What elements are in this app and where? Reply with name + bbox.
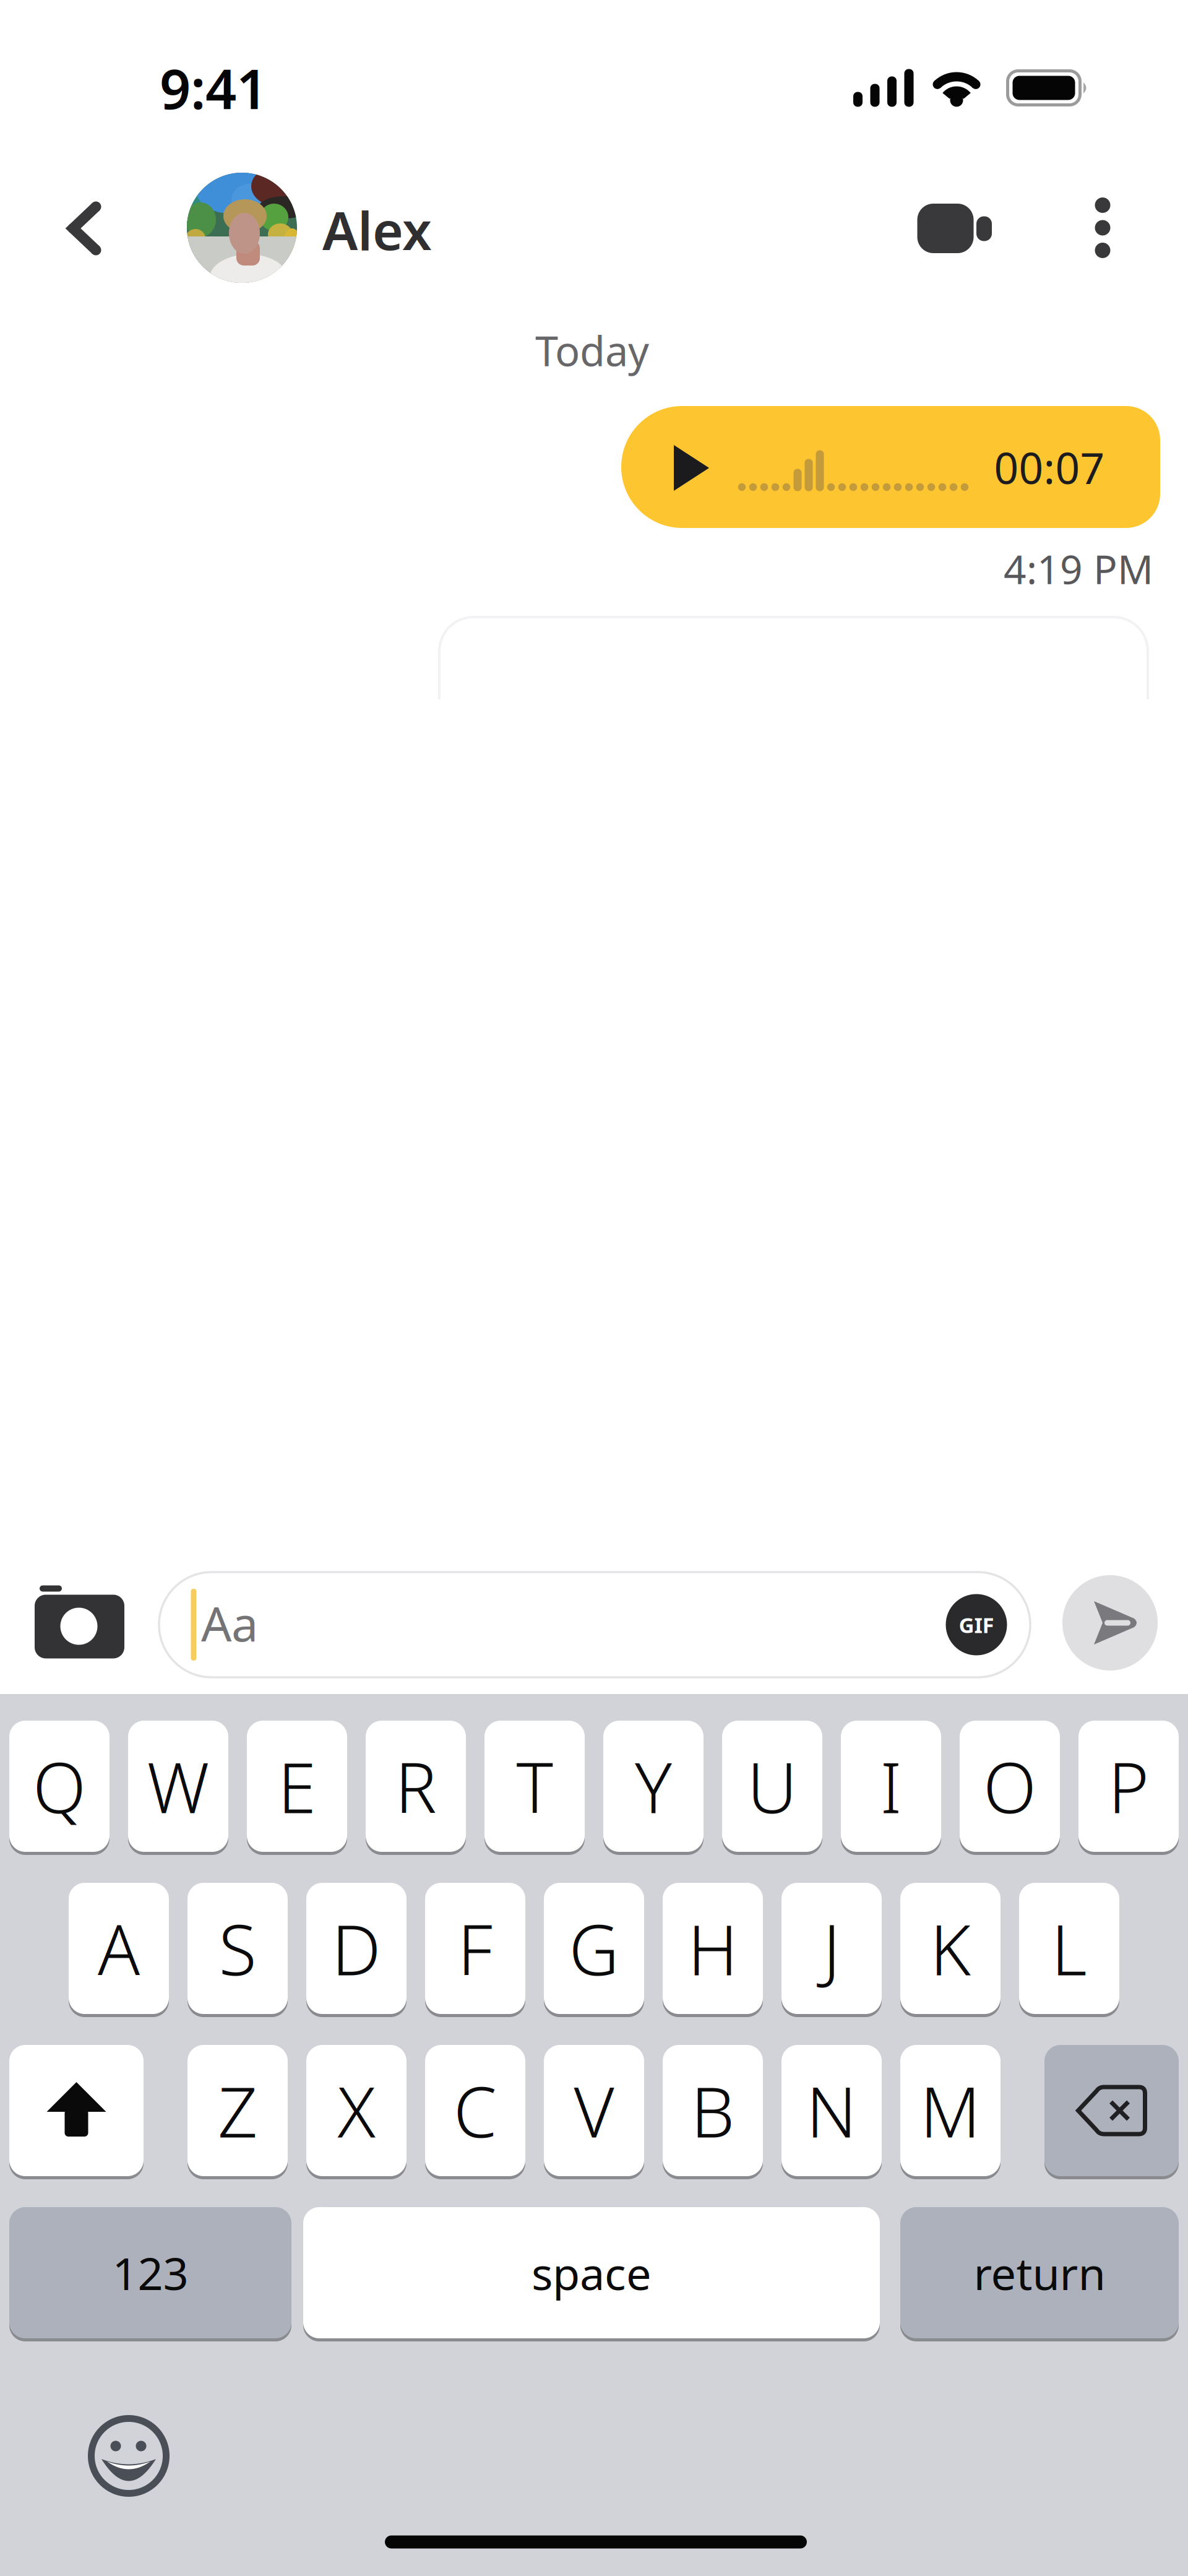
staticText: B [691,2065,735,2157]
button[interactable]: E [247,1719,347,1853]
button[interactable] [67,201,104,256]
button[interactable]: N [781,2043,882,2178]
button[interactable]: K [900,1881,1001,2016]
staticText: return [974,2243,1105,2302]
staticText: 4:19 PM [1004,542,1153,595]
staticText: GIF [959,1610,994,1639]
staticText: Alex [322,195,432,265]
button[interactable]: W [128,1719,228,1853]
staticText: G [569,1902,619,1994]
staticText: M [920,2065,981,2157]
staticText: P [1108,1740,1149,1832]
button[interactable]: H [663,1881,763,2016]
button[interactable]: Y [603,1719,704,1853]
staticText: 9:41 [160,52,267,124]
staticText: O [983,1740,1036,1832]
button[interactable]: GIF [946,1594,1007,1655]
staticText: F [458,1902,493,1994]
staticText: space [532,2243,652,2302]
staticText: T [516,1740,553,1832]
staticText: Q [33,1740,86,1832]
button[interactable]: L [1019,1881,1119,2016]
button[interactable]: T [484,1719,585,1853]
button[interactable]: R [366,1719,466,1853]
button[interactable] [9,2043,144,2178]
staticText: W [147,1740,209,1832]
staticText: Aa [201,1591,258,1655]
staticText: V [574,2065,614,2157]
button[interactable]: I [841,1719,941,1853]
staticText: 123 [112,2243,188,2302]
button[interactable] [1095,197,1110,258]
button[interactable]: D [306,1881,407,2016]
button[interactable]: F [425,1881,525,2016]
staticText: R [395,1740,437,1832]
button[interactable]: return [900,2206,1179,2340]
staticText: U [747,1740,797,1832]
button[interactable] [187,173,297,283]
staticText: 00:07 [994,439,1105,496]
staticText: I [880,1740,902,1832]
button[interactable]: X [306,2043,407,2178]
staticText: E [278,1740,316,1832]
staticText: Z [218,2065,257,2157]
button[interactable]: Alex [322,196,632,264]
button[interactable]: Z [187,2043,288,2178]
button[interactable]: G [544,1881,644,2016]
staticText: L [1051,1902,1087,1994]
staticText: S [219,1902,256,1994]
button[interactable] [1062,1575,1158,1671]
button[interactable]: U [722,1719,822,1853]
staticText: Today [535,323,649,378]
staticText: K [930,1902,971,1994]
button[interactable] [88,2415,170,2497]
button[interactable] [1044,2043,1179,2178]
button[interactable]: 123 [9,2206,291,2340]
button[interactable]: P [1078,1719,1179,1853]
staticText: D [332,1902,381,1994]
button[interactable]: O [960,1719,1060,1853]
button[interactable]: Aa [159,1572,1030,1677]
button[interactable]: M [900,2043,1001,2178]
button[interactable]: space [303,2206,880,2340]
button[interactable]: A [69,1881,169,2016]
button[interactable]: B [663,2043,763,2178]
staticText: J [823,1902,840,1994]
button[interactable] [917,204,992,253]
button[interactable]: V [544,2043,644,2178]
button[interactable] [35,1582,124,1658]
button[interactable]: C [425,2043,525,2178]
staticText: Y [635,1740,672,1832]
button[interactable]: Q [9,1719,110,1853]
button[interactable]: S [187,1881,288,2016]
staticText: N [806,2065,857,2157]
button[interactable]: J [781,1881,882,2016]
button[interactable]: 00:07 [621,406,1160,528]
staticText: X [338,2065,375,2157]
staticText: C [454,2065,497,2157]
staticText: H [688,1902,738,1994]
staticText: A [98,1902,140,1994]
